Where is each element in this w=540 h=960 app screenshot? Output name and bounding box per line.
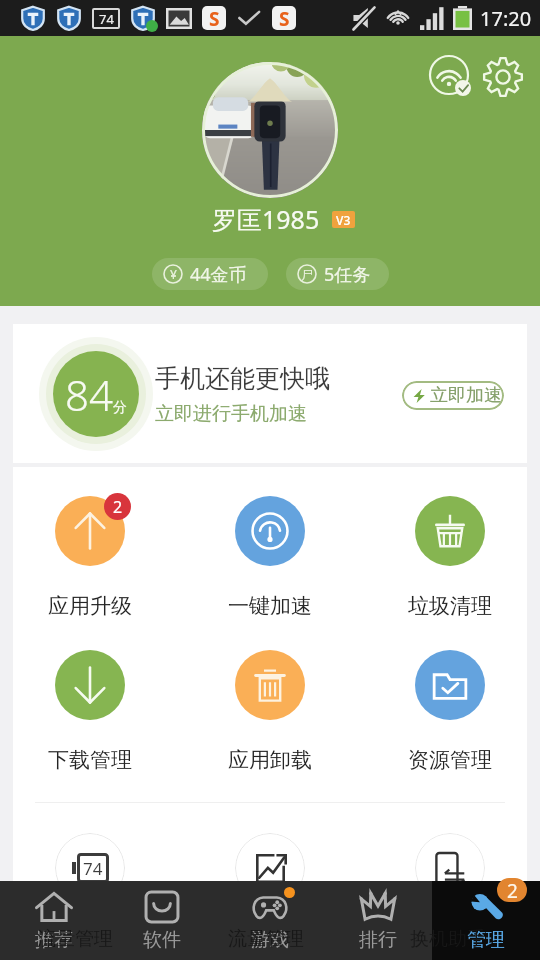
button[interactable]: 2 <box>432 881 540 960</box>
staticText: 下载管理 <box>48 747 132 773</box>
button[interactable]: Settings <box>479 53 527 101</box>
button[interactable]: 游戏 <box>216 881 324 960</box>
button[interactable]: 尸 <box>286 258 389 290</box>
staticText: 2 <box>507 878 518 902</box>
staticText: 74 <box>83 857 103 880</box>
button[interactable]: WiFi status <box>425 53 473 101</box>
button[interactable]: ¥ <box>152 258 268 290</box>
button[interactable]: 84 <box>13 324 527 463</box>
staticText: 排行 <box>359 928 397 952</box>
button[interactable] <box>400 640 500 730</box>
staticText: 一键加速 <box>228 593 312 619</box>
staticText: 流量管理 <box>228 927 304 951</box>
button[interactable]: 排行 <box>324 881 432 960</box>
staticText: V3 <box>336 212 351 228</box>
button[interactable] <box>220 640 320 730</box>
button[interactable]: 立即加速 <box>402 381 504 410</box>
button[interactable] <box>220 823 320 913</box>
staticText: 17:20 <box>480 5 532 32</box>
staticText: 推荐 <box>35 928 73 952</box>
button[interactable] <box>400 486 500 576</box>
staticText: 44金币 <box>190 262 247 287</box>
staticText: 流量管理 <box>37 927 113 951</box>
staticText: 立即进行手机加速 <box>155 402 307 426</box>
button[interactable]: 推荐 <box>0 881 108 960</box>
staticText: 尸 <box>301 267 313 282</box>
staticText: ¥ <box>170 266 177 282</box>
staticText: S <box>209 6 220 30</box>
button[interactable]: 软件 <box>108 881 216 960</box>
button[interactable]: Profile photo <box>202 62 338 198</box>
staticText: S <box>279 6 290 30</box>
staticText: 手机还能更快哦 <box>155 363 330 394</box>
staticText: 分 <box>113 399 127 417</box>
button[interactable]: 74 <box>40 823 140 913</box>
button[interactable] <box>400 823 500 913</box>
staticText: 5任务 <box>324 262 371 287</box>
button[interactable] <box>40 640 140 730</box>
staticText: 资源管理 <box>408 747 492 773</box>
staticText: 罗匡1985 <box>212 202 320 236</box>
staticText: 2 <box>113 496 123 518</box>
staticText: 换机助手 <box>410 927 486 951</box>
staticText: 垃圾清理 <box>408 593 492 619</box>
staticText: 游戏 <box>251 928 289 952</box>
staticText: 应用升级 <box>48 593 132 619</box>
button[interactable]: 2 <box>40 486 140 576</box>
staticText: 立即加速 <box>430 384 502 407</box>
staticText: 74 <box>99 10 114 28</box>
staticText: 应用卸载 <box>228 747 312 773</box>
staticText: 软件 <box>143 928 181 952</box>
staticText: 管理 <box>467 928 505 952</box>
button[interactable] <box>220 486 320 576</box>
staticText: 84 <box>65 366 113 423</box>
